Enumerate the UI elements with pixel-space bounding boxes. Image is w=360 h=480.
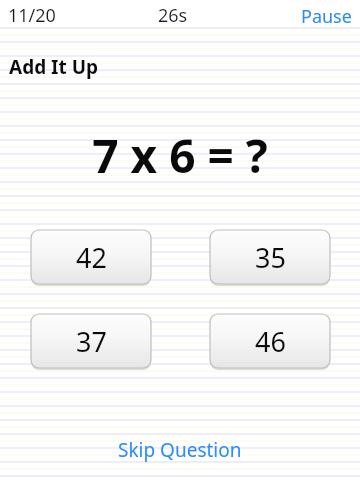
staticText: 46 xyxy=(255,323,286,360)
button[interactable]: 37 xyxy=(31,314,151,368)
staticText: 11/20 xyxy=(8,3,56,28)
button[interactable]: Skip Question xyxy=(104,431,256,469)
button[interactable]: 42 xyxy=(31,230,151,284)
staticText: 42 xyxy=(76,239,107,276)
button[interactable]: Pause xyxy=(293,0,360,30)
button[interactable]: 46 xyxy=(210,314,330,368)
staticText: 37 xyxy=(76,323,107,360)
staticText: 35 xyxy=(255,239,286,276)
staticText: 7 x 6 = ? xyxy=(0,124,360,187)
staticText: Pause xyxy=(301,4,352,26)
staticText: Add It Up xyxy=(9,54,99,80)
staticText: 26s xyxy=(158,3,188,28)
button[interactable]: 35 xyxy=(210,230,330,284)
staticText: Skip Question xyxy=(118,437,242,463)
